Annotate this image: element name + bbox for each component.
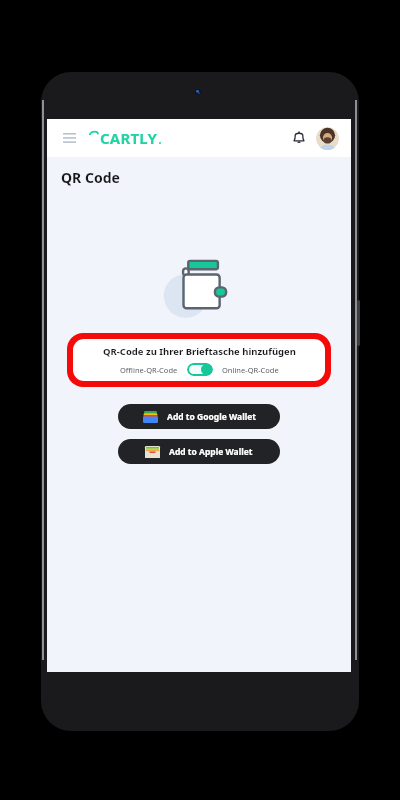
staticText: CARTLY xyxy=(100,128,158,148)
button[interactable]: Toggle QR code type xyxy=(187,363,213,376)
button[interactable]: Add to Apple Wallet xyxy=(118,439,280,464)
staticText: Offline-QR-Code xyxy=(120,365,178,375)
staticText: Add to Google Wallet xyxy=(167,411,256,423)
button[interactable]: Add to Google Wallet xyxy=(118,404,280,429)
staticText: QR-Code zu Ihrer Brieftasche hinzufügen xyxy=(103,345,296,358)
button[interactable]: Notifications xyxy=(288,127,310,149)
staticText: QR Code xyxy=(61,168,120,187)
staticText: Add to Apple Wallet xyxy=(169,446,253,458)
button[interactable]: Menu xyxy=(59,128,79,148)
staticText: Online-QR-Code xyxy=(222,365,279,375)
button[interactable]: Profile xyxy=(316,127,339,150)
